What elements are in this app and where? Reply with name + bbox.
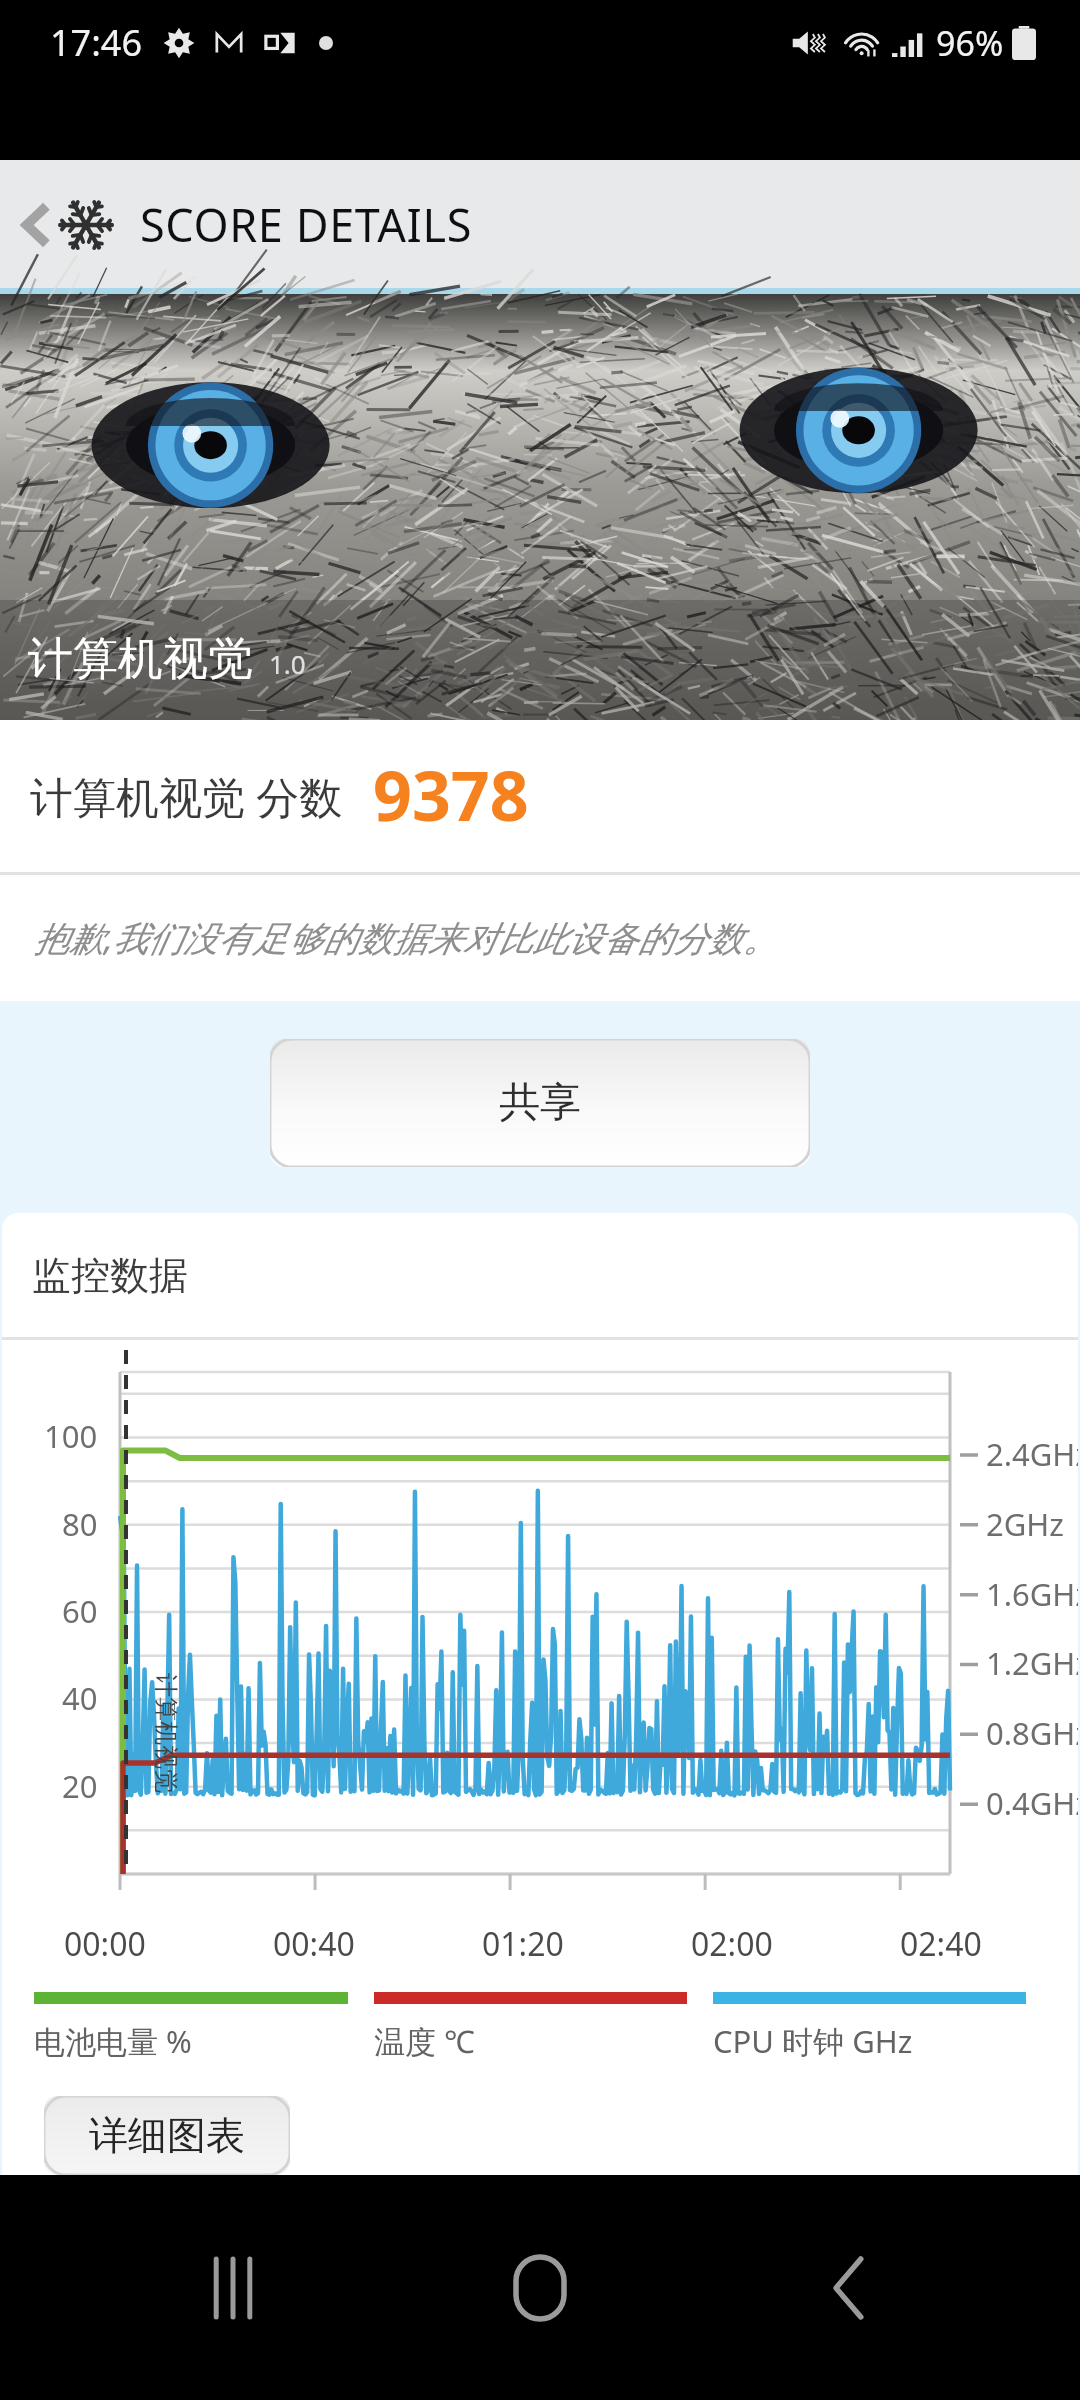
staticText: 计算机视觉 [151,1673,181,1793]
button[interactable]: Back [773,2213,923,2363]
other: Back [20,199,50,251]
staticText: 01:20 [482,1922,564,1966]
staticText: 共享 [499,1077,581,1129]
staticText: 0.8GHz [986,1712,1078,1754]
staticText: 00:40 [273,1922,355,1966]
staticText: 2.4GHz [986,1433,1078,1475]
button[interactable]: 详细图表 [44,2096,290,2175]
staticText: 100 [44,1415,98,1457]
staticText: 抱歉,我们没有足够的数据来对比此设备的分数。 [34,914,778,962]
staticText: SCORE DETAILS [140,194,472,255]
button[interactable]: Back [10,184,482,265]
staticText: 80 [62,1503,98,1545]
button[interactable]: 共享 [270,1039,810,1167]
staticText: 02:40 [900,1922,982,1966]
staticText: 电池电量 % [34,2020,192,2062]
staticText: 监控数据 [32,1251,188,1300]
staticText: 1.2GHz [986,1642,1078,1684]
staticText: CPU 时钟 GHz [713,2020,913,2062]
staticText: 1.0 [269,646,306,681]
staticText: 1.6GHz [986,1573,1078,1615]
staticText: 40 [62,1677,98,1719]
staticText: 计算机视觉 分数 [30,767,343,826]
staticText: 9378 [373,748,529,841]
staticText: 2GHz [986,1503,1064,1545]
staticText: 详细图表 [89,2111,245,2160]
staticText: 60 [62,1590,98,1632]
staticText: 02:00 [691,1922,773,1966]
button[interactable]: Recents [158,2213,308,2363]
staticText: 计算机视觉 [28,631,253,688]
staticText: 温度 ℃ [374,2020,475,2062]
staticText: 96% [936,20,1004,66]
staticText: 00:00 [64,1922,146,1966]
staticText: 20 [62,1765,98,1807]
button[interactable]: Home [465,2213,615,2363]
staticText: 17:46 [50,18,143,67]
staticText: 0.4GHz [986,1782,1078,1824]
